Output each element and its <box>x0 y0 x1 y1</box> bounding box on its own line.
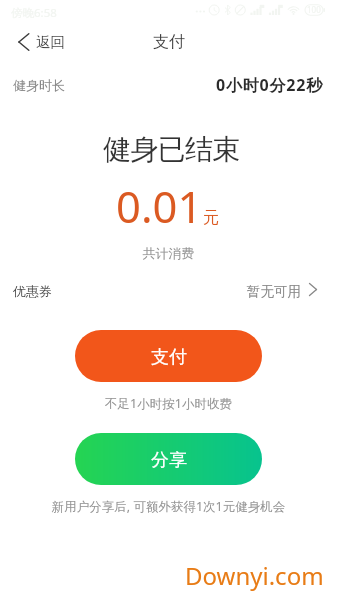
staticText: 共计消费 <box>0 245 337 261</box>
staticText: 傍晚6:58 <box>11 5 57 21</box>
staticText: 100 <box>307 4 321 15</box>
staticText: 新用户分享后, 可额外获得1次1元健身机会 <box>0 498 337 515</box>
staticText: 暂无可用 <box>247 283 301 300</box>
staticText: 优惠券 <box>13 283 52 299</box>
staticText: 分享 <box>151 449 187 472</box>
button[interactable]: 返回 <box>0 27 75 57</box>
staticText: 0.01 <box>116 176 203 235</box>
staticText: Downyi.com <box>185 559 324 592</box>
staticText: 支付 <box>151 346 187 369</box>
button[interactable]: 支付 <box>75 330 262 382</box>
staticText: 返回 <box>36 33 65 51</box>
staticText: 健身时长 <box>13 77 65 93</box>
staticText: 0小时0分22秒 <box>216 74 324 96</box>
staticText: 不足1小时按1小时收费 <box>0 395 337 412</box>
button[interactable]: 优惠券 <box>0 278 337 304</box>
staticText: 支付 <box>153 32 185 52</box>
button[interactable]: 分享 <box>75 433 262 485</box>
staticText: 元 <box>203 208 219 228</box>
staticText: 健身已结束 <box>3 132 337 167</box>
